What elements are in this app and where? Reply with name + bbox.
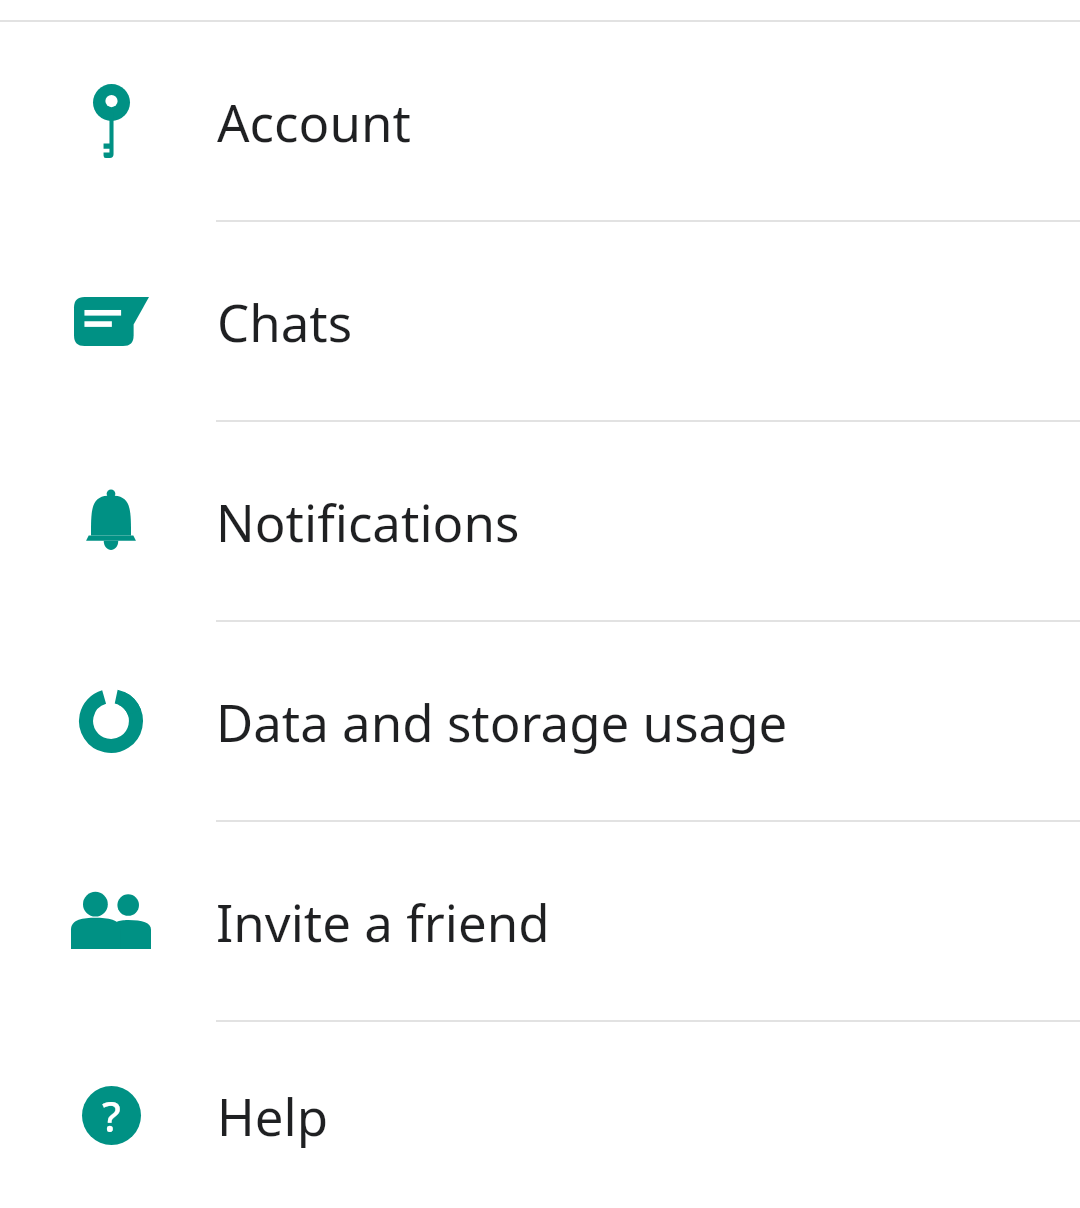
- staticText: Account: [217, 87, 411, 156]
- staticText: ?: [102, 1087, 121, 1144]
- staticText: Help: [217, 1081, 329, 1150]
- other: Data and storage usage: [79, 689, 143, 753]
- other: Help: [82, 1086, 141, 1145]
- other: Chats: [74, 297, 149, 346]
- button[interactable]: Data and storage usage: [0, 622, 1080, 820]
- staticText: Invite a friend: [216, 887, 550, 956]
- other: Invite a friend: [71, 893, 151, 949]
- staticText: Data and storage usage: [216, 687, 788, 756]
- button[interactable]: Help: [0, 1022, 1080, 1208]
- button[interactable]: Invite a friend: [0, 822, 1080, 1020]
- button[interactable]: Account: [0, 22, 1080, 220]
- button[interactable]: Notifications: [0, 422, 1080, 620]
- other: Notifications: [82, 489, 140, 553]
- button[interactable]: Chats: [0, 222, 1080, 420]
- staticText: Chats: [217, 287, 353, 356]
- staticText: Notifications: [216, 487, 520, 556]
- other: Account: [93, 84, 130, 158]
